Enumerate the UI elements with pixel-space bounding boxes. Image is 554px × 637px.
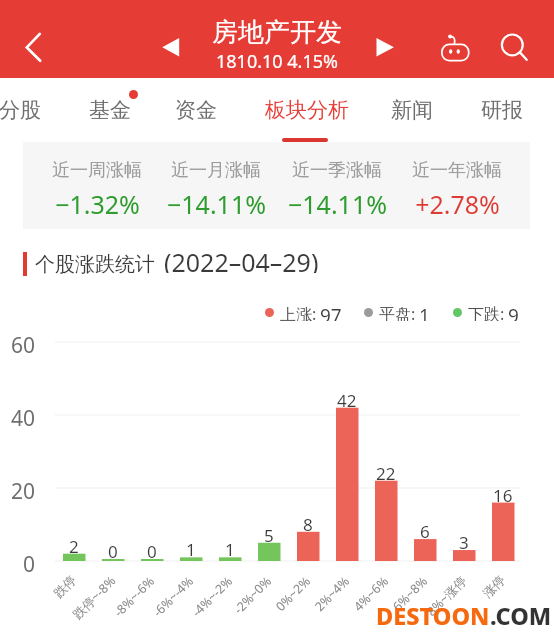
button[interactable]: 近一周涨幅 (37, 159, 157, 221)
staticText: 16 (493, 484, 513, 502)
staticText: 研报 (481, 97, 523, 123)
button[interactable]: Next sector (367, 29, 403, 65)
staticText: 0 (147, 540, 157, 558)
staticText: −1.32% (55, 187, 140, 221)
staticText: 6%~8% (389, 572, 431, 615)
staticText: 2 (69, 535, 79, 553)
staticText: 涨停 (480, 572, 509, 601)
staticText: 20 (11, 477, 36, 501)
button[interactable]: 研报 (472, 78, 532, 140)
staticText: 资金 (175, 97, 217, 123)
staticText: DESTOON (376, 600, 490, 632)
staticText: .COM (490, 600, 552, 632)
staticText: −14.11% (288, 187, 387, 221)
button[interactable]: 上涨: (265, 303, 342, 321)
button[interactable]: AI assistant (433, 24, 477, 68)
staticText: 跌停~-8% (69, 572, 119, 622)
button[interactable]: 新闻 (382, 78, 442, 140)
staticText: 60 (11, 331, 36, 355)
button[interactable]: 板块分析 (257, 78, 357, 140)
button[interactable]: 基金 (80, 78, 140, 140)
staticText: 分股 (0, 97, 41, 123)
staticText: 1810.10 4.15% (216, 49, 338, 74)
button[interactable]: 个股涨跌统计 (23, 250, 319, 278)
staticText: 42 (337, 389, 357, 407)
staticText: −14.11% (167, 187, 266, 221)
staticText: 6 (420, 520, 430, 538)
staticText: 5 (264, 524, 274, 542)
button[interactable]: Search (490, 24, 534, 68)
staticText: -8%~-6% (110, 572, 158, 620)
button[interactable]: 平盘: (364, 303, 430, 321)
staticText: -6%~-4% (149, 572, 197, 620)
staticText: 新闻 (391, 97, 433, 123)
staticText: 近一年涨幅 (412, 159, 502, 182)
staticText: 板块分析 (265, 97, 349, 123)
button[interactable]: 下跌: (453, 303, 519, 321)
staticText: 0 (108, 540, 118, 558)
button[interactable]: Previous sector (153, 29, 189, 65)
staticText: 1 (186, 538, 196, 556)
button[interactable]: 近一季涨幅 (277, 159, 397, 221)
staticText: 基金 (89, 97, 131, 123)
staticText: 8%~涨停 (423, 572, 470, 620)
staticText: 跌停 (51, 572, 80, 601)
staticText: 4%~6% (350, 572, 392, 615)
staticText: 近一季涨幅 (292, 159, 382, 182)
staticText: 平盘: (379, 303, 416, 321)
staticText: 97 (320, 303, 342, 321)
staticText: 个股涨跌统计 (35, 252, 155, 277)
staticText: 近一周涨幅 (52, 159, 142, 182)
staticText: +2.78% (415, 187, 500, 221)
staticText: 1 (419, 303, 430, 321)
staticText: 2%~4% (311, 572, 353, 615)
staticText: -4%~-2% (188, 572, 236, 620)
staticText: 0%~2% (272, 572, 314, 615)
staticText: 22 (376, 462, 396, 480)
button[interactable]: 近一月涨幅 (156, 159, 276, 221)
staticText: 3 (459, 531, 469, 549)
staticText: 下跌: (468, 303, 505, 321)
button[interactable]: Back (12, 25, 54, 67)
staticText: 1 (225, 538, 235, 556)
staticText: -2%~0% (230, 572, 275, 618)
staticText: (2022–04–29) (164, 245, 319, 273)
staticText: 近一月涨幅 (171, 159, 261, 182)
staticText: 0 (23, 550, 36, 574)
button[interactable]: 分股 (0, 78, 50, 140)
button[interactable]: 资金 (166, 78, 226, 140)
staticText: 上涨: (280, 303, 317, 321)
button[interactable]: 近一年涨幅 (397, 159, 517, 221)
staticText: 房地产开发 (212, 16, 342, 49)
staticText: 8 (303, 513, 313, 531)
staticText: 40 (11, 404, 36, 428)
staticText: 9 (508, 303, 519, 321)
